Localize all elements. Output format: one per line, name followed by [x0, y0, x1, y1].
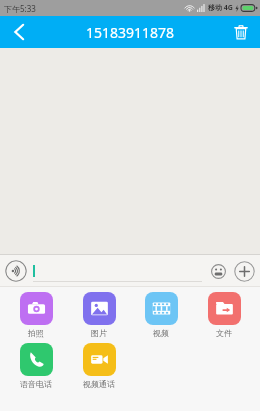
staticText: 语音电话 [20, 379, 52, 389]
staticText: 拍照 [28, 328, 44, 338]
button[interactable]: 文件 [198, 292, 250, 338]
button[interactable]: 图片 [73, 292, 125, 338]
staticText: 15183911878 [86, 23, 175, 42]
button[interactable] [33, 260, 202, 282]
button[interactable]: Back [0, 16, 38, 48]
button[interactable]: 视频 [135, 292, 187, 338]
button[interactable]: Emoji [208, 261, 228, 281]
staticText: 下午5:33 [4, 3, 36, 14]
staticText: 视频 [153, 328, 169, 338]
button[interactable]: 拍照 [10, 292, 62, 338]
staticText: 文件 [216, 328, 232, 338]
staticText: 图片 [91, 328, 107, 338]
button[interactable]: 语音电话 [10, 343, 62, 389]
staticText: 视频通话 [83, 379, 115, 389]
button[interactable]: Delete [222, 16, 260, 48]
button[interactable]: Voice input [5, 260, 27, 282]
button[interactable]: Add attachment [233, 260, 255, 282]
button[interactable]: 视频通话 [73, 343, 125, 389]
staticText: 移动 4G [208, 3, 233, 13]
